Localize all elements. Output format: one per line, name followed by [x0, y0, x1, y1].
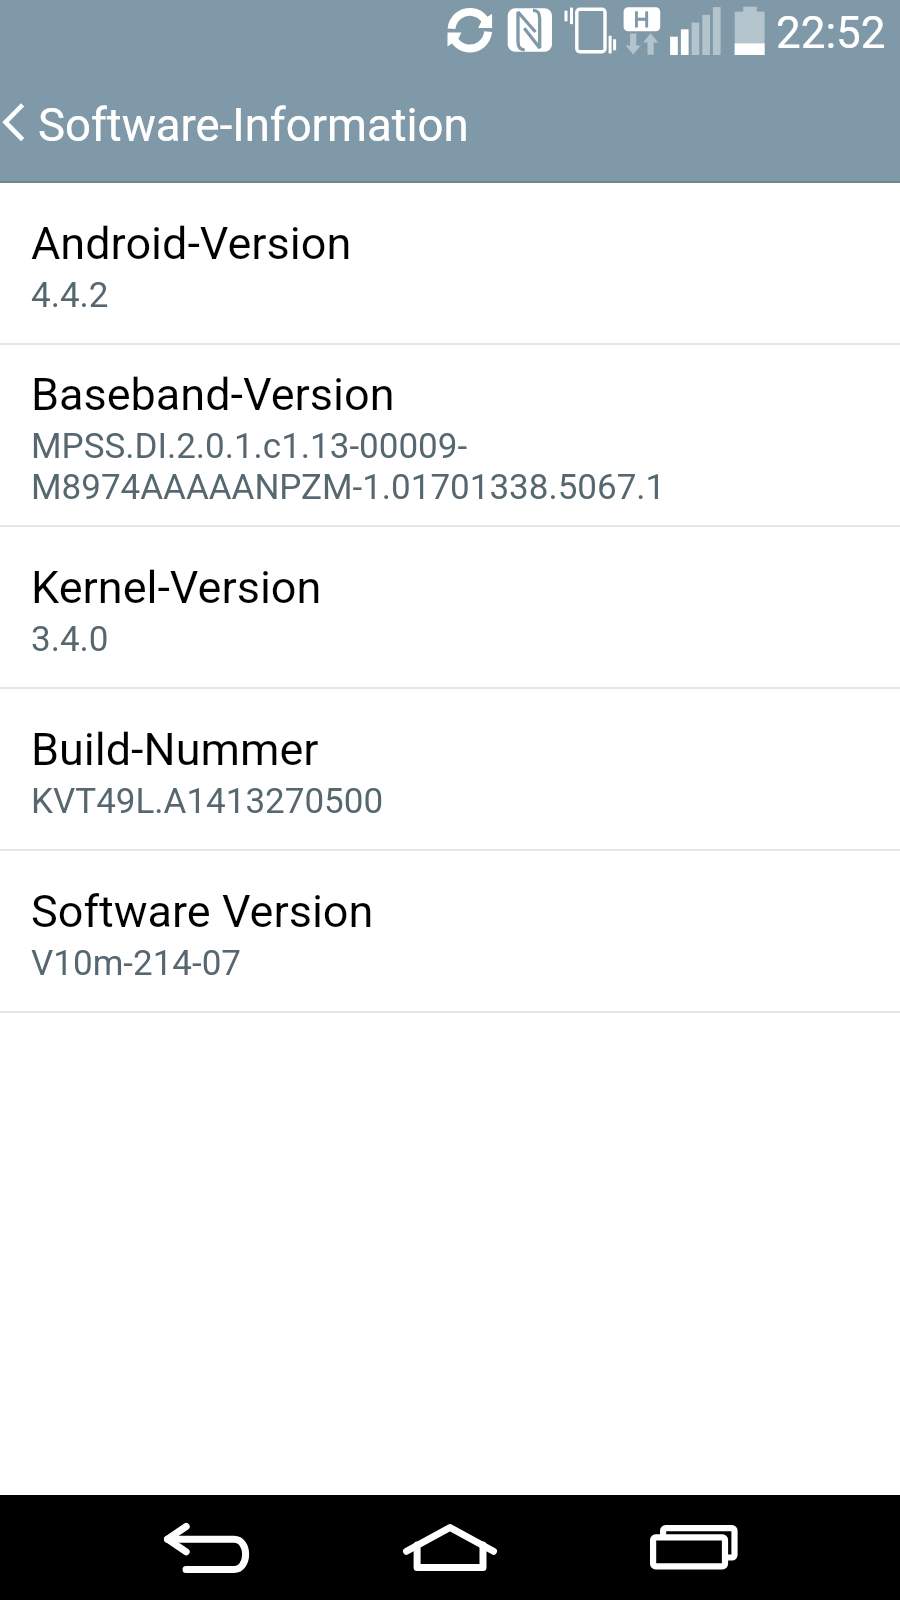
button[interactable]: Android-Version — [0, 183, 900, 343]
staticText: Build-Nummer — [31, 723, 319, 776]
staticText: Software-Information — [38, 99, 469, 152]
button[interactable]: Back — [136, 1495, 281, 1600]
button[interactable]: Navigate up — [0, 62, 900, 181]
button[interactable]: Baseband-Version — [0, 345, 900, 525]
staticText: Software Version — [31, 885, 374, 938]
button[interactable]: Build-Nummer — [0, 689, 900, 849]
staticText: Baseband-Version — [31, 368, 395, 421]
staticText: Android-Version — [31, 217, 352, 270]
staticText: M8974AAAAANPZM-1.01701338.5067.1 — [31, 467, 666, 508]
button[interactable]: Recent apps — [621, 1495, 766, 1600]
button[interactable]: Home — [379, 1495, 524, 1600]
button[interactable]: Software Version — [0, 851, 900, 1011]
staticText: 22:52 — [776, 7, 886, 59]
staticText: KVT49L.A1413270500 — [31, 781, 384, 822]
button[interactable]: Kernel-Version — [0, 527, 900, 687]
other: Navigate up — [1, 99, 33, 145]
staticText: Kernel-Version — [31, 561, 322, 614]
staticText: 3.4.0 — [31, 619, 109, 660]
staticText: MPSS.DI.2.0.1.c1.13-00009- — [31, 426, 468, 467]
staticText: V10m-214-07 — [31, 943, 242, 984]
staticText: 4.4.2 — [31, 275, 109, 316]
